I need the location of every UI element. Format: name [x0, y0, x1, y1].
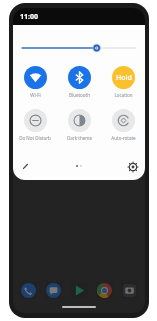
- button[interactable]: Chrome: [96, 282, 113, 299]
- staticText: Location: [114, 92, 133, 98]
- button[interactable]: Settings: [127, 161, 138, 172]
- button[interactable]: Play Store: [71, 282, 88, 299]
- staticText: Bluetooth: [69, 92, 90, 98]
- staticText: Hold: [116, 73, 132, 83]
- button[interactable]: Dark theme: [57, 109, 101, 141]
- button[interactable]: Hold: [101, 66, 145, 98]
- button[interactable]: Brightness: [22, 42, 136, 54]
- staticText: 11:00: [20, 12, 38, 22]
- button[interactable]: Bluetooth: [57, 66, 101, 98]
- button[interactable]: Messages: [45, 282, 62, 299]
- button[interactable]: Edit tiles: [20, 161, 31, 172]
- staticText: Do Not Disturb: [19, 135, 51, 141]
- staticText: Dark theme: [67, 135, 92, 141]
- button[interactable]: Auto-rotate: [101, 109, 145, 141]
- staticText: Auto-rotate: [111, 135, 136, 141]
- button[interactable]: Camera: [121, 282, 138, 299]
- staticText: Wi-Fi: [30, 92, 41, 98]
- button[interactable]: Do Not Disturb: [13, 109, 57, 141]
- button[interactable]: Wi-Fi: [13, 66, 57, 98]
- button[interactable]: Phone: [20, 282, 37, 299]
